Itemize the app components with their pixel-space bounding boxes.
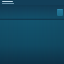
- button[interactable]: [0, 0, 64, 5]
- button[interactable]: Open card: [57, 9, 63, 16]
